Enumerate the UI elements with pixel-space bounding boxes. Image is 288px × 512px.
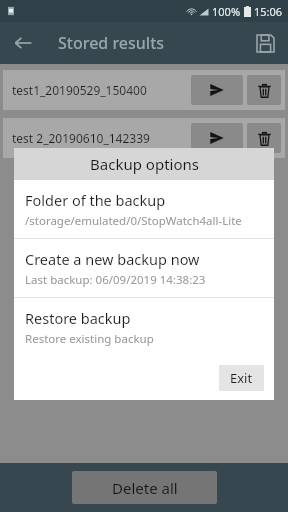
button[interactable]: Create a new backup now	[14, 239, 274, 297]
staticText: /storage/emulated/0/StopWatch4all-Lite	[25, 213, 242, 229]
button[interactable]: Delete	[247, 75, 281, 105]
button[interactable]: Exit	[219, 365, 264, 391]
staticText: Create a new backup now	[25, 249, 200, 269]
button[interactable]: Delete	[247, 123, 281, 153]
staticText: Folder of the backup	[25, 190, 166, 210]
button[interactable]: Delete all	[72, 471, 217, 504]
button[interactable]: Back	[6, 26, 40, 60]
staticText: test 2_20190610_142339	[12, 130, 191, 146]
button[interactable]: Export	[191, 75, 243, 105]
staticText: 15:06	[254, 4, 283, 19]
button[interactable]: test 2_20190610_142339	[3, 118, 285, 158]
staticText: 100%	[212, 4, 241, 19]
staticText: test1_20190529_150400	[12, 82, 191, 98]
staticText: Backup options	[90, 154, 199, 174]
staticText: Stored results	[58, 32, 165, 54]
button[interactable]: Export	[191, 123, 243, 153]
staticText: Last backup: 06/09/2019 14:38:23	[25, 272, 206, 288]
staticText: Delete all	[112, 478, 178, 498]
staticText: Exit	[230, 369, 253, 387]
staticText: Restore backup	[25, 308, 131, 328]
button[interactable]: Restore backup	[14, 298, 274, 356]
button[interactable]: Save	[248, 26, 282, 60]
button[interactable]: test1_20190529_150400	[3, 70, 285, 110]
button[interactable]: Folder of the backup	[14, 180, 274, 238]
staticText: Restore existing backup	[25, 331, 154, 347]
